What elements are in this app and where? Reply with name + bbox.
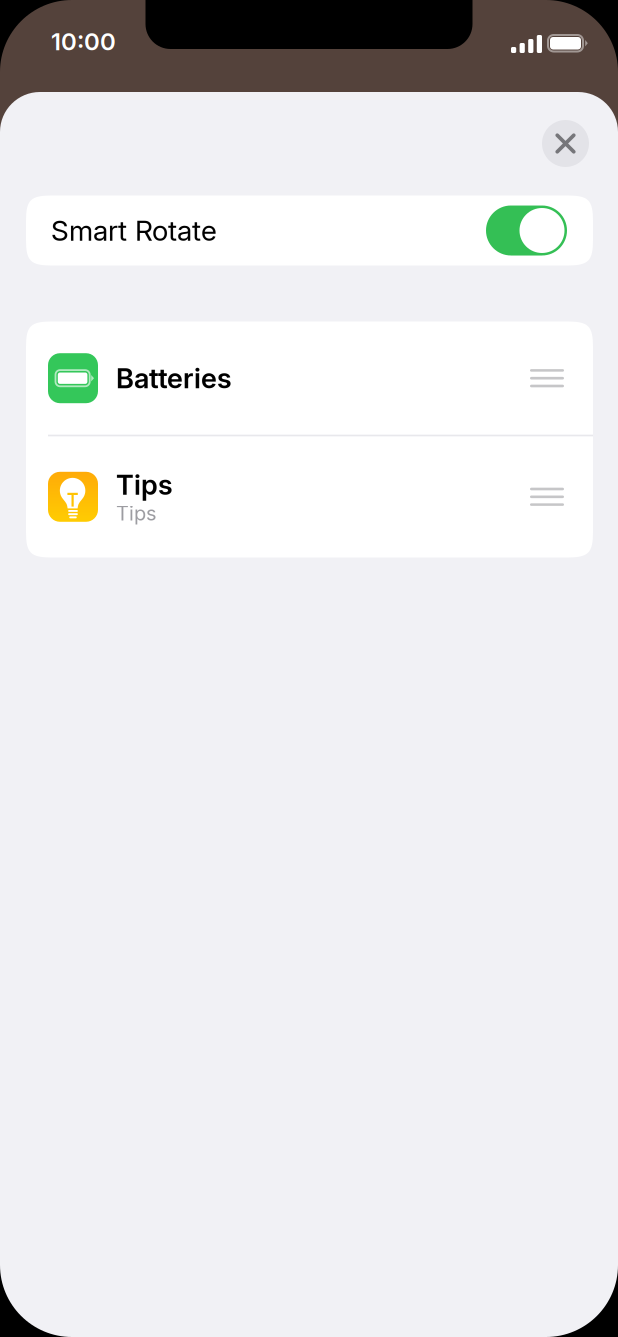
- staticText: Smart Rotate: [51, 214, 217, 247]
- button[interactable]: Close: [542, 120, 589, 167]
- staticText: Batteries: [116, 362, 232, 395]
- staticText: Tips: [116, 468, 173, 501]
- staticText: 10:00: [51, 27, 116, 56]
- staticText: Tips: [116, 501, 156, 525]
- button[interactable]: Smart Rotate: [486, 205, 567, 255]
- button[interactable]: Tips: [26, 436, 593, 557]
- button[interactable]: Smart Rotate: [26, 195, 593, 265]
- button[interactable]: Batteries: [26, 322, 593, 435]
